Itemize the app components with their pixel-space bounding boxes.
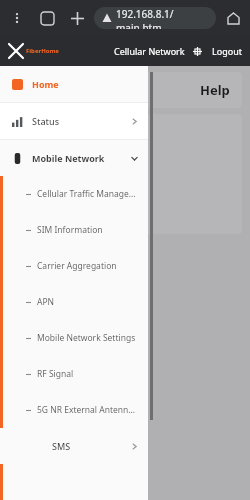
button[interactable]: Logout — [212, 45, 242, 57]
button[interactable]: Home — [222, 7, 244, 29]
button[interactable]: New tab — [66, 7, 88, 29]
button[interactable]: Help — [8, 72, 242, 108]
staticText: 192.168.8.1/main.htm — [116, 7, 208, 29]
staticText: Carrier Aggregation — [37, 260, 117, 272]
button[interactable]: SMS — [0, 428, 148, 464]
button[interactable]: More options — [6, 7, 28, 29]
button[interactable]: Tabs — [36, 7, 58, 29]
staticText: Mobile Network Settings — [37, 332, 136, 344]
button[interactable]: Cellular Network — [114, 45, 185, 57]
staticText: Help — [200, 81, 230, 99]
button[interactable]: Cellular Traffic Manage… — [0, 176, 148, 212]
staticText: SMS — [52, 440, 71, 452]
button[interactable]: 192.168.8.1/main.htm — [94, 7, 216, 29]
button[interactable]: SIM Information — [0, 212, 148, 248]
button[interactable]: 5G NR External Antenn… — [0, 392, 148, 428]
staticText: Home — [32, 78, 59, 90]
staticText: FiberHome — [26, 47, 59, 55]
button[interactable]: Home — [0, 66, 148, 102]
staticText: RF Signal — [37, 368, 74, 380]
button[interactable]: Language — [190, 44, 204, 58]
button[interactable]: Carrier Aggregation — [0, 248, 148, 284]
staticText: Status — [32, 115, 60, 127]
staticText: APN — [37, 296, 55, 308]
button[interactable]: APN — [0, 284, 148, 320]
staticText: Cellular Traffic Manage… — [37, 188, 136, 200]
button[interactable]: Status — [0, 103, 148, 139]
staticText: Mobile Network — [32, 152, 105, 164]
staticText: SIM Information — [37, 224, 103, 236]
button[interactable]: RF Signal — [0, 356, 148, 392]
staticText: 5G NR External Antenn… — [37, 404, 136, 416]
button[interactable]: Mobile Network Settings — [0, 320, 148, 356]
button[interactable]: Mobile Network — [0, 140, 148, 176]
button[interactable]: FiberHome — [8, 43, 59, 59]
